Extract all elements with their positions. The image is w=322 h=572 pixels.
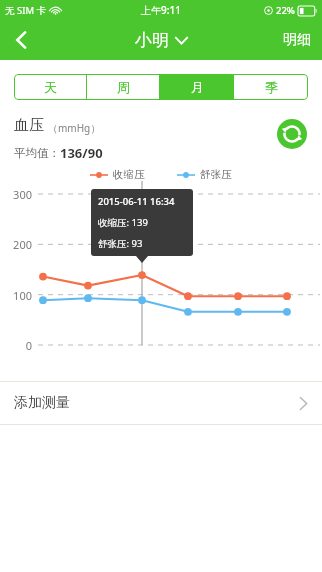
staticText: 无 SIM 卡 [5,4,46,17]
staticText: 上午9:11 [141,3,181,17]
button[interactable]: 周 [87,74,160,100]
staticText: 小明 [135,30,169,51]
button[interactable]: 刷新 [276,118,308,150]
staticText: （mmHg） [48,121,101,135]
staticText: 周 [117,79,130,95]
button[interactable]: 明细 [272,20,322,60]
button[interactable]: 添加测量 [0,382,322,424]
button[interactable]: 返回 [0,20,42,60]
staticText: 0 [4,338,32,353]
staticText: 明细 [283,31,311,49]
button[interactable]: 小明 [135,30,188,51]
button[interactable]: 天 [14,74,87,100]
staticText: 月 [191,79,204,95]
staticText: 季 [265,79,278,95]
staticText: 200 [4,237,32,252]
button[interactable]: 季 [234,74,308,100]
staticText: 收缩压 [113,168,145,181]
staticText: 天 [44,79,57,95]
staticText: 血压 [14,116,44,135]
staticText: 300 [4,187,32,202]
button[interactable]: 月 [160,74,234,100]
staticText: 收缩压: 139 [98,216,148,229]
staticText: 100 [4,288,32,303]
staticText: 136/90 [60,144,103,162]
staticText: 舒张压 [200,168,232,181]
staticText: 22% [276,4,295,17]
staticText: 舒张压: 93 [98,237,143,250]
staticText: 平均值： [14,146,60,160]
staticText: 2015-06-11 16:34 [98,195,175,208]
staticText: 添加测量 [14,394,70,412]
